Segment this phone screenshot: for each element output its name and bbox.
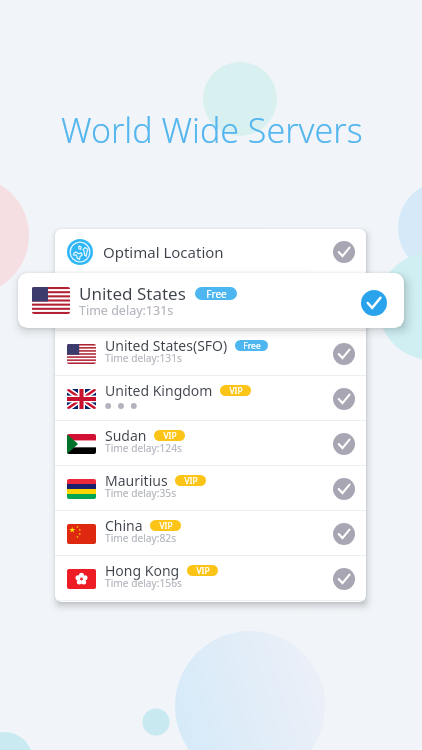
- staticText: United States: [105, 285, 193, 304]
- staticText: Sudan: [105, 426, 147, 445]
- staticText: United States: [79, 282, 186, 305]
- staticText: Time delay:35s: [105, 486, 177, 500]
- staticText: China: [105, 516, 143, 535]
- staticText: Optimal Location: [103, 242, 224, 262]
- staticText: Time delay:82s: [105, 531, 177, 545]
- staticText: VIP: [184, 475, 198, 486]
- staticText: Hong Kong: [105, 561, 180, 580]
- staticText: Free: [206, 287, 227, 300]
- staticText: Mauritius: [105, 471, 168, 490]
- button[interactable]: Mauritius: [55, 466, 366, 511]
- staticText: Free: [243, 340, 261, 351]
- button[interactable]: Optimal Location: [55, 229, 366, 275]
- staticText: VIP: [159, 520, 173, 531]
- button[interactable]: United States: [55, 275, 366, 331]
- button[interactable]: Hong Kong: [55, 556, 366, 601]
- staticText: Time delay:131s: [105, 351, 182, 365]
- staticText: VIP: [229, 385, 243, 396]
- staticText: Time delay:156s: [105, 576, 182, 590]
- button[interactable]: United States: [18, 273, 404, 328]
- staticText: Time delay:124s: [105, 441, 182, 455]
- staticText: United Kingdom: [105, 381, 213, 400]
- staticText: VIP: [196, 565, 210, 576]
- staticText: Free: [208, 289, 226, 300]
- button[interactable]: United Kingdom: [55, 376, 366, 421]
- staticText: World Wide Servers: [61, 107, 363, 153]
- staticText: VIP: [163, 430, 177, 441]
- button[interactable]: China: [55, 511, 366, 556]
- staticText: Time delay:131s: [105, 300, 182, 314]
- staticText: United States(SFO): [105, 336, 228, 355]
- button[interactable]: United States(SFO): [55, 331, 366, 376]
- staticText: Time delay:131s: [79, 302, 174, 319]
- button[interactable]: Sudan: [55, 421, 366, 466]
